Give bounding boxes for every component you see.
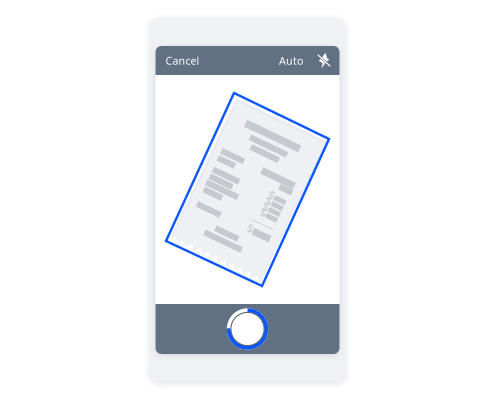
button[interactable]: Flash off: [306, 51, 332, 69]
staticText: Cancel: [165, 53, 199, 68]
staticText: $: [268, 183, 275, 198]
button[interactable]: Capture: [224, 306, 270, 352]
button[interactable]: Auto: [276, 45, 306, 76]
staticText: Auto: [279, 53, 303, 68]
staticText: $: [263, 215, 270, 231]
button[interactable]: Cancel: [162, 45, 202, 76]
staticText: $: [268, 189, 275, 205]
staticText: $: [268, 196, 275, 211]
staticText: $: [268, 176, 275, 192]
